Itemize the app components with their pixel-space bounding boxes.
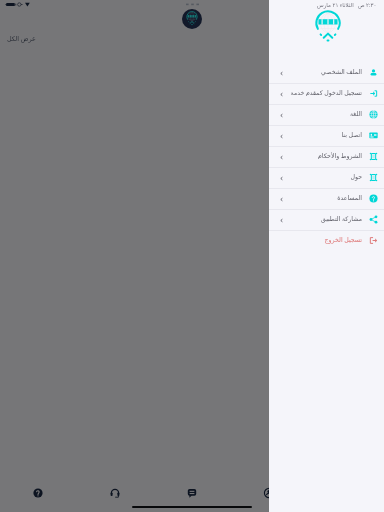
staticText: اللغة [284, 110, 362, 117]
staticText: عرض الكل [7, 34, 36, 43]
button[interactable]: تسجيل الدخول كمقدم خدمة [269, 84, 384, 105]
staticText: تسجيل الخروج [284, 235, 362, 243]
button[interactable]: الشروط والأحكام [269, 147, 384, 168]
button[interactable]: Help [0, 478, 76, 508]
staticText: تسجيل الدخول كمقدم خدمة [284, 88, 362, 96]
button[interactable]: مشاركة التطبيق [269, 210, 384, 231]
staticText: اتصل بنا [284, 130, 362, 138]
staticText: حول [284, 173, 362, 180]
button[interactable]: Close drawer [0, 0, 269, 512]
button[interactable]: المساعدة [269, 189, 384, 210]
button[interactable]: عرض الكل [5, 33, 38, 44]
staticText: الملف الشخصي [284, 67, 362, 75]
staticText: ٢:٣٠ ص الثلاثاء ٢١ مارس [317, 1, 377, 8]
button[interactable]: Account [230, 478, 307, 508]
staticText: مشاركة التطبيق [284, 214, 362, 222]
staticText: المساعدة [284, 194, 362, 201]
button[interactable]: App logo [182, 9, 202, 29]
button[interactable]: حول [269, 168, 384, 189]
button[interactable]: تسجيل الخروج [269, 231, 384, 251]
button[interactable]: الملف الشخصي [269, 63, 384, 84]
button[interactable]: Support [76, 478, 153, 508]
button[interactable]: Chat [153, 478, 230, 508]
button[interactable]: اللغة [269, 105, 384, 126]
staticText: الشروط والأحكام [284, 151, 362, 159]
button[interactable]: اتصل بنا [269, 126, 384, 147]
